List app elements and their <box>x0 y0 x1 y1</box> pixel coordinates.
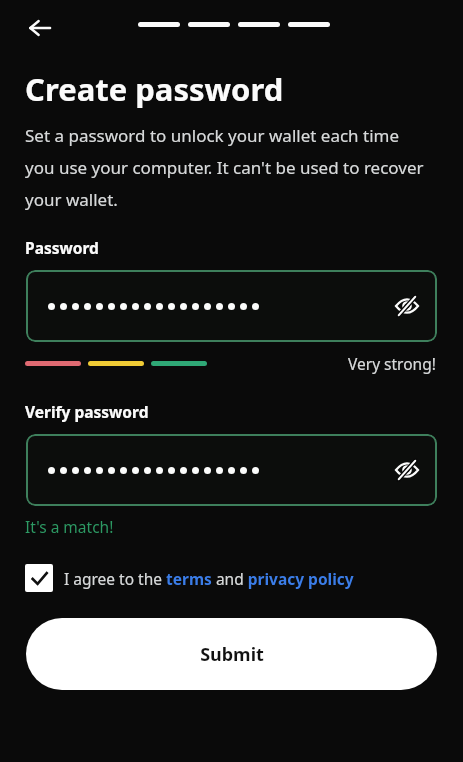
button[interactable]: Submit <box>26 618 437 690</box>
button[interactable]: I agree to the terms and privacy policy <box>25 564 354 592</box>
staticText: Verify password <box>25 401 149 422</box>
staticText: Password <box>25 237 99 258</box>
staticText: Very strong! <box>348 353 436 374</box>
staticText: Create password <box>25 68 284 110</box>
button[interactable]: Hide password <box>26 270 437 342</box>
staticText: Submit <box>200 642 264 667</box>
button[interactable]: Hide password <box>26 434 437 506</box>
button[interactable]: Hide password <box>385 284 429 328</box>
button[interactable]: Back <box>18 6 62 50</box>
staticText: It's a match! <box>25 516 114 537</box>
staticText: Set a password to unlock your wallet eac… <box>25 124 429 211</box>
button[interactable]: Hide password <box>385 448 429 492</box>
staticText: I agree to the terms and privacy policy <box>64 568 354 589</box>
